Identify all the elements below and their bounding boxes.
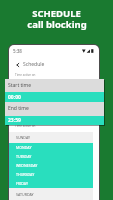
staticText: MONDAY — [16, 145, 32, 150]
button[interactable]: WEDNESDAY — [9, 161, 93, 170]
button[interactable]: Back — [13, 60, 22, 69]
staticText: Time active on — [15, 124, 36, 128]
button[interactable]: THURSDAY — [9, 170, 93, 179]
staticText: Schedule — [23, 61, 45, 68]
staticText: WEDNESDAY — [16, 163, 38, 168]
staticText: End time — [8, 105, 29, 112]
staticText: 5:38 — [13, 48, 22, 54]
staticText: call blocking — [27, 18, 87, 31]
staticText: THURSDAY — [16, 172, 35, 177]
button[interactable]: 23:59 — [5, 116, 104, 125]
button[interactable]: SUNDAY — [9, 132, 93, 143]
button[interactable]: End time — [5, 102, 104, 116]
button[interactable]: MONDAY — [9, 143, 93, 152]
staticText: SCHEDULE — [32, 7, 81, 20]
staticText: 00:00 — [8, 94, 21, 101]
button[interactable]: TUESDAY — [9, 152, 93, 161]
button[interactable]: FRIDAY — [9, 179, 93, 188]
staticText: SUNDAY — [16, 135, 30, 140]
button[interactable]: Start time — [5, 79, 104, 92]
staticText: TUESDAY — [16, 154, 32, 159]
staticText: SATURDAY — [16, 192, 34, 197]
button[interactable]: 00:00 — [5, 92, 104, 102]
staticText: Time active on — [15, 73, 36, 77]
staticText: FRIDAY — [16, 181, 28, 186]
staticText: 23:59 — [8, 117, 21, 124]
staticText: Start time — [8, 82, 32, 89]
button[interactable]: SATURDAY — [9, 188, 93, 200]
